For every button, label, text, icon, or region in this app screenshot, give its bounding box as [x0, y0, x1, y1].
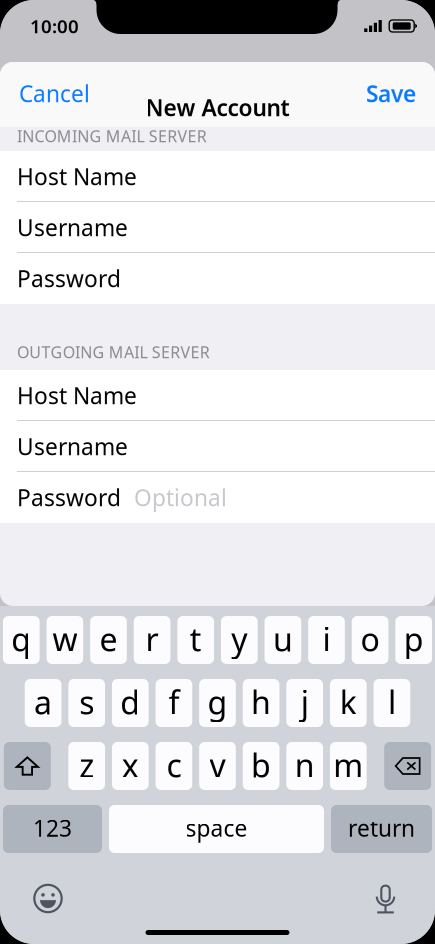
button[interactable]: v: [199, 742, 236, 790]
staticText: o: [361, 618, 380, 660]
staticText: Cancel: [19, 78, 90, 108]
button[interactable]: k: [330, 679, 367, 727]
staticText: New Account: [145, 92, 289, 122]
staticText: b: [251, 744, 271, 786]
button[interactable]: Password: [0, 253, 435, 304]
button[interactable]: space: [109, 805, 324, 853]
staticText: l: [388, 681, 396, 723]
button[interactable]: e: [90, 616, 127, 664]
staticText: Host Name: [17, 380, 137, 410]
staticText: space: [185, 813, 247, 843]
staticText: e: [99, 618, 117, 660]
button[interactable]: s: [68, 679, 105, 727]
button[interactable]: i: [308, 616, 345, 664]
button[interactable]: Shift: [4, 742, 51, 790]
staticText: r: [146, 618, 159, 660]
staticText: w: [52, 618, 77, 660]
staticText: 10:00: [30, 14, 79, 38]
button[interactable]: n: [286, 742, 323, 790]
staticText: j: [301, 681, 309, 723]
button[interactable]: f: [156, 679, 192, 727]
staticText: a: [34, 681, 52, 723]
staticText: q: [11, 618, 31, 660]
button[interactable]: a: [25, 679, 61, 727]
button[interactable]: m: [330, 742, 367, 790]
button[interactable]: t: [177, 616, 214, 664]
button[interactable]: c: [156, 742, 192, 790]
staticText: Password: [17, 482, 121, 512]
button[interactable]: d: [112, 679, 149, 727]
staticText: Optional: [134, 482, 227, 512]
button[interactable]: x: [112, 742, 149, 790]
button[interactable]: o: [352, 616, 388, 664]
button[interactable]: j: [286, 679, 323, 727]
staticText: return: [348, 813, 415, 843]
button[interactable]: Username: [0, 421, 435, 472]
button[interactable]: b: [243, 742, 279, 790]
staticText: m: [333, 744, 363, 786]
button[interactable]: w: [47, 616, 83, 664]
button[interactable]: p: [395, 616, 432, 664]
button[interactable]: h: [243, 679, 279, 727]
staticText: t: [190, 618, 202, 660]
staticText: Password: [17, 263, 121, 293]
staticText: k: [340, 681, 357, 723]
staticText: Save: [366, 78, 416, 108]
button[interactable]: Username: [0, 202, 435, 253]
button[interactable]: return: [331, 805, 432, 853]
button[interactable]: Password: [0, 472, 435, 523]
staticText: p: [404, 618, 424, 660]
staticText: n: [295, 744, 315, 786]
button[interactable]: Delete: [384, 742, 431, 790]
staticText: u: [273, 618, 293, 660]
staticText: d: [120, 681, 140, 723]
staticText: g: [207, 681, 227, 723]
button[interactable]: u: [265, 616, 301, 664]
staticText: f: [168, 681, 179, 723]
staticText: INCOMING MAIL SERVER: [17, 125, 207, 147]
staticText: Host Name: [17, 161, 137, 191]
button[interactable]: 123: [3, 805, 102, 853]
button[interactable]: z: [68, 742, 105, 790]
staticText: x: [122, 744, 139, 786]
button[interactable]: g: [199, 679, 236, 727]
staticText: i: [322, 618, 330, 660]
button[interactable]: q: [3, 616, 40, 664]
button[interactable]: Emoji: [33, 883, 63, 913]
button[interactable]: l: [374, 679, 410, 727]
button[interactable]: Save: [352, 70, 435, 116]
staticText: v: [209, 744, 225, 786]
staticText: c: [166, 744, 181, 786]
staticText: OUTGOING MAIL SERVER: [17, 341, 210, 363]
button[interactable]: Dictation: [375, 883, 396, 914]
button[interactable]: Cancel: [0, 70, 104, 116]
staticText: Username: [17, 212, 128, 242]
button[interactable]: Host Name: [0, 370, 435, 421]
staticText: h: [251, 681, 271, 723]
staticText: z: [79, 744, 94, 786]
staticText: y: [231, 618, 247, 660]
button[interactable]: y: [221, 616, 258, 664]
staticText: Username: [17, 431, 128, 461]
button[interactable]: Host Name: [0, 151, 435, 202]
button[interactable]: r: [134, 616, 170, 664]
staticText: s: [79, 681, 94, 723]
staticText: 123: [33, 813, 72, 843]
